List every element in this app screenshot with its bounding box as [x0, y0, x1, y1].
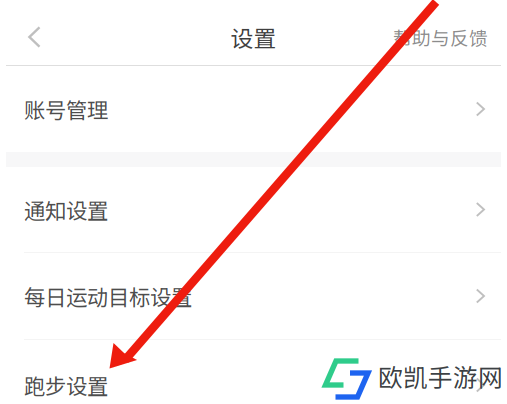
staticText: 通知设置 [24, 194, 108, 225]
button[interactable]: 跑步设置 [6, 340, 501, 404]
staticText: 设置 [230, 21, 276, 53]
button[interactable]: 帮助与反馈 [393, 15, 501, 59]
staticText: 帮助与反馈 [393, 23, 488, 50]
button[interactable]: 账号管理 [6, 66, 501, 152]
staticText: 账号管理 [24, 94, 108, 124]
staticText: 欧凯手游网 [378, 358, 503, 394]
staticText: 跑步设置 [24, 370, 108, 400]
button[interactable]: 通知设置 [6, 167, 501, 252]
button[interactable]: 返回 [6, 15, 59, 59]
staticText: 每日运动目标设置 [24, 281, 192, 311]
button[interactable]: 每日运动目标设置 [6, 253, 501, 339]
